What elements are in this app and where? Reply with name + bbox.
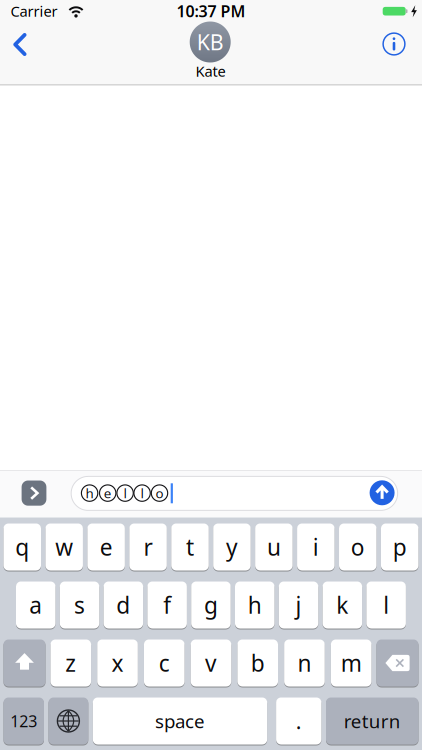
staticText: w xyxy=(55,532,73,562)
button[interactable]: j xyxy=(279,581,318,628)
button[interactable] xyxy=(71,476,398,510)
button[interactable]: t xyxy=(171,523,209,570)
staticText: g xyxy=(204,590,218,620)
staticText: k xyxy=(336,590,348,620)
staticText: e xyxy=(100,532,113,562)
button[interactable]: u xyxy=(255,523,293,570)
staticText: t xyxy=(186,532,194,562)
button[interactable]: g xyxy=(191,581,231,628)
staticText: space xyxy=(155,709,205,733)
staticText: s xyxy=(74,590,85,620)
staticText: Kate xyxy=(195,61,225,81)
button[interactable]: e xyxy=(87,523,125,570)
staticText: p xyxy=(393,532,407,562)
staticText: e xyxy=(104,484,112,502)
button[interactable]: b xyxy=(237,639,278,686)
staticText: o xyxy=(155,484,163,502)
button[interactable]: Kate xyxy=(195,61,225,81)
button[interactable]: i xyxy=(297,523,335,570)
button[interactable]: o xyxy=(339,523,376,570)
staticText: b xyxy=(251,648,265,678)
staticText: h xyxy=(86,484,94,502)
button[interactable]: v xyxy=(191,639,231,686)
button[interactable]: k xyxy=(323,581,362,628)
button[interactable]: 123 xyxy=(3,697,44,744)
staticText: z xyxy=(65,648,76,678)
staticText: v xyxy=(205,648,217,678)
button[interactable]: s xyxy=(60,581,99,628)
button[interactable]: return xyxy=(326,697,418,744)
button[interactable] xyxy=(383,33,405,55)
staticText: q xyxy=(15,532,29,562)
staticText: KB xyxy=(197,28,224,56)
button[interactable] xyxy=(370,480,395,505)
staticText: . xyxy=(296,707,302,735)
button[interactable] xyxy=(48,697,88,744)
staticText: n xyxy=(297,648,311,678)
staticText: o xyxy=(351,532,365,562)
staticText: l xyxy=(383,590,389,620)
button[interactable]: y xyxy=(213,523,251,570)
button[interactable] xyxy=(13,33,26,56)
staticText: 123 xyxy=(10,710,37,732)
staticText: i xyxy=(313,532,319,562)
button[interactable]: w xyxy=(45,523,83,570)
button[interactable]: m xyxy=(331,639,371,686)
button[interactable]: h xyxy=(235,581,274,628)
staticText: h xyxy=(248,590,262,620)
button[interactable]: p xyxy=(381,523,418,570)
staticText: 10:37 PM xyxy=(176,0,245,22)
staticText: return xyxy=(344,709,401,733)
button[interactable]: n xyxy=(284,639,325,686)
button[interactable]: c xyxy=(144,639,185,686)
staticText: l xyxy=(124,484,127,502)
button[interactable]: f xyxy=(147,581,187,628)
button[interactable]: l xyxy=(366,581,406,628)
staticText: f xyxy=(163,590,171,620)
staticText: Carrier xyxy=(10,1,57,21)
button[interactable]: KB xyxy=(190,21,231,62)
button[interactable]: q xyxy=(3,523,41,570)
button[interactable]: z xyxy=(50,639,91,686)
staticText: l xyxy=(141,484,144,502)
staticText: d xyxy=(116,590,130,620)
button[interactable]: . xyxy=(276,697,321,744)
button[interactable]: d xyxy=(104,581,143,628)
staticText: a xyxy=(29,590,42,620)
button[interactable] xyxy=(376,639,418,686)
staticText: m xyxy=(341,648,362,678)
button[interactable] xyxy=(3,639,45,686)
staticText: x xyxy=(111,648,123,678)
button[interactable]: x xyxy=(97,639,138,686)
staticText: u xyxy=(267,532,281,562)
button[interactable] xyxy=(22,480,46,506)
staticText: j xyxy=(295,590,301,620)
button[interactable]: r xyxy=(129,523,167,570)
staticText: c xyxy=(159,648,170,678)
button[interactable]: space xyxy=(93,697,267,744)
button[interactable]: a xyxy=(16,581,55,628)
staticText: r xyxy=(144,532,153,562)
staticText: y xyxy=(226,532,238,562)
